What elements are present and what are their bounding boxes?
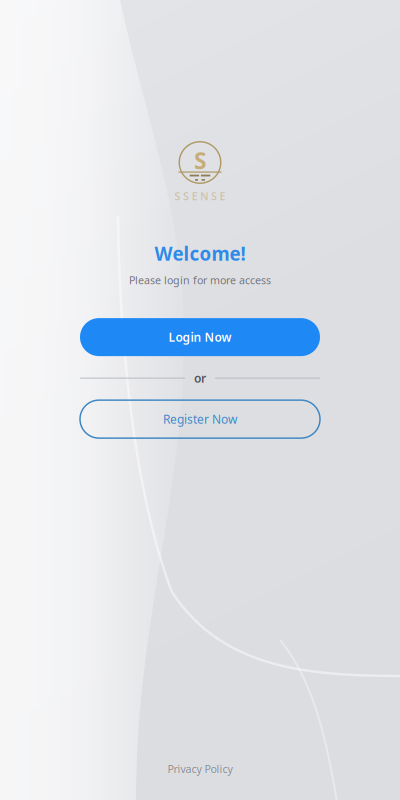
staticText: SSENSE [174, 189, 225, 203]
staticText: Login Now [168, 329, 231, 345]
staticText: Please login for more access [129, 273, 271, 287]
staticText: S [194, 145, 206, 176]
staticText: or [194, 370, 206, 386]
staticText: Privacy Policy [167, 762, 232, 776]
staticText: Register Now [163, 411, 237, 427]
staticText: Welcome! [154, 241, 245, 266]
button[interactable]: Login Now [80, 318, 320, 356]
button[interactable]: Privacy Policy [167, 762, 232, 776]
button[interactable]: Register Now [80, 400, 320, 438]
